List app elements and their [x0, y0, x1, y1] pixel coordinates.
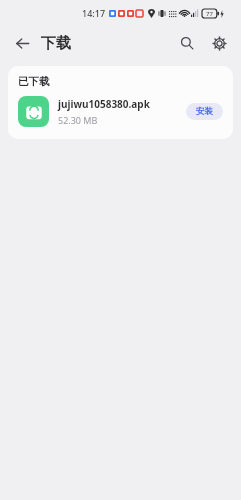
staticText: 下载 [41, 34, 71, 53]
staticText: 77 [206, 10, 213, 18]
button[interactable]: Search [173, 29, 201, 57]
staticText: 14:17 [82, 7, 106, 19]
staticText: jujiwu1058380.apk [58, 97, 150, 111]
button[interactable]: jujiwu1058380.apk [8, 96, 233, 139]
staticText: 已下载 [18, 75, 50, 88]
button[interactable]: 安装 [186, 103, 223, 120]
staticText: 安装 [196, 106, 213, 117]
button[interactable]: Back [8, 29, 36, 57]
staticText: 52.30 MB [58, 114, 98, 126]
button[interactable]: Settings [205, 29, 233, 57]
